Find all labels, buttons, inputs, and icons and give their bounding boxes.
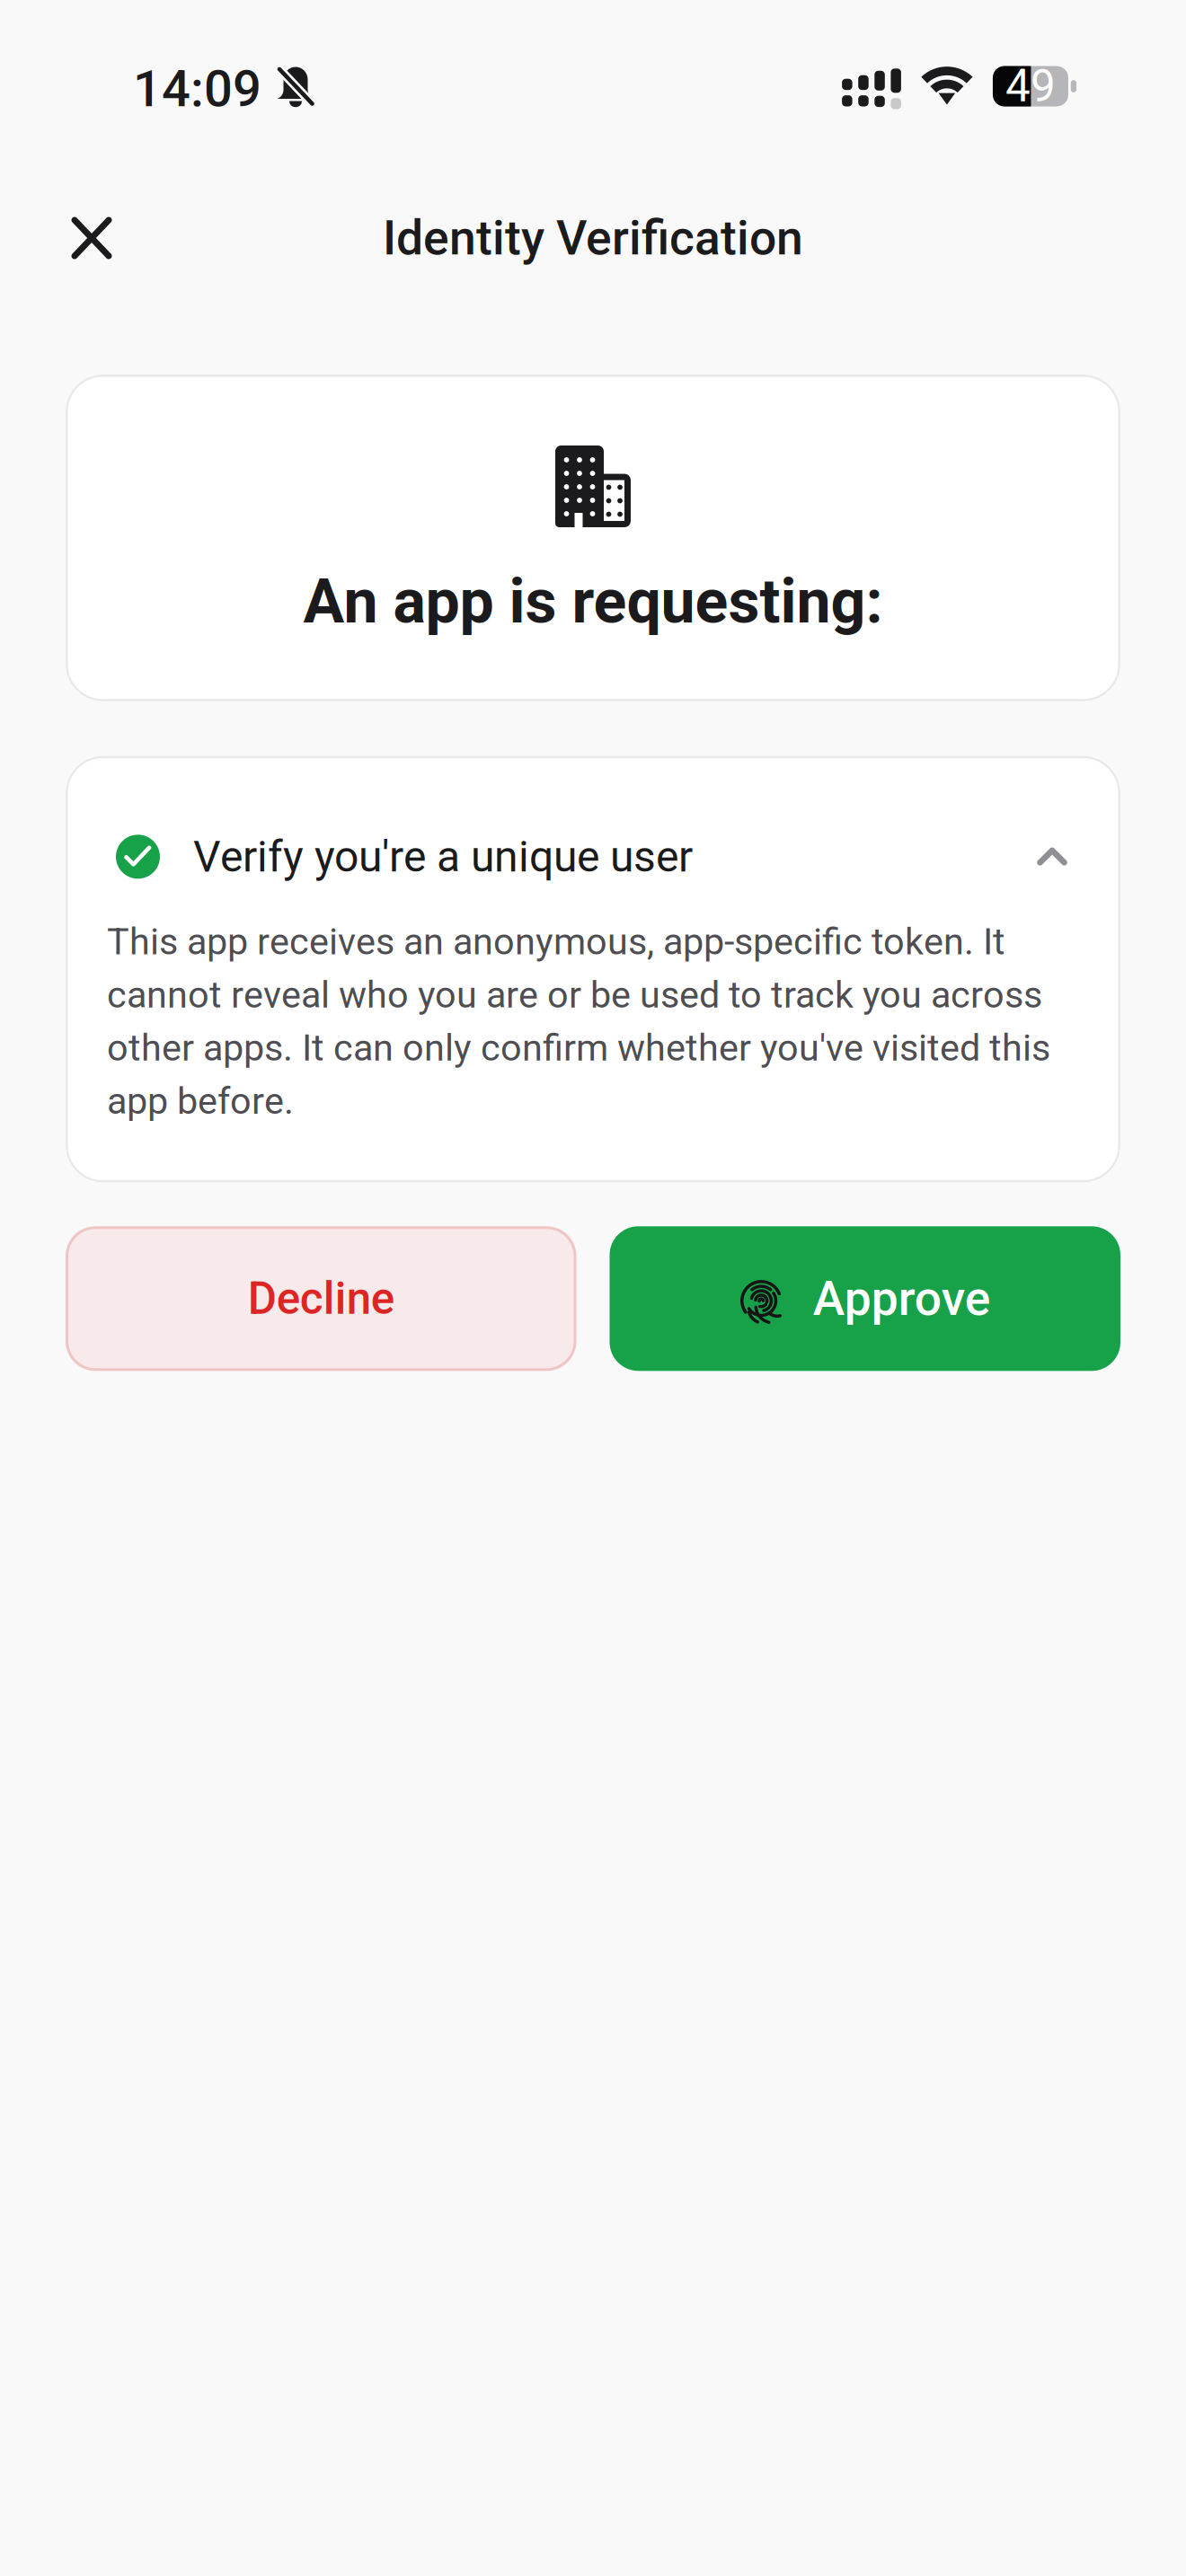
staticText: This app receives an anonymous, app-spec… — [107, 915, 1050, 1127]
button[interactable]: Decline — [66, 1226, 576, 1371]
staticText: Approve — [813, 1271, 991, 1327]
button[interactable]: Approve — [610, 1226, 1120, 1371]
staticText: Decline — [248, 1273, 394, 1325]
staticText: 14:09 — [133, 59, 261, 118]
staticText: 49 — [1005, 60, 1056, 112]
staticText: Verify you're a unique user — [193, 831, 693, 882]
button[interactable]: Close — [49, 195, 135, 281]
button[interactable]: Verify you're a unique user — [107, 831, 1079, 882]
staticText: An app is requesting: — [303, 566, 883, 637]
staticText: Identity Verification — [383, 210, 803, 266]
